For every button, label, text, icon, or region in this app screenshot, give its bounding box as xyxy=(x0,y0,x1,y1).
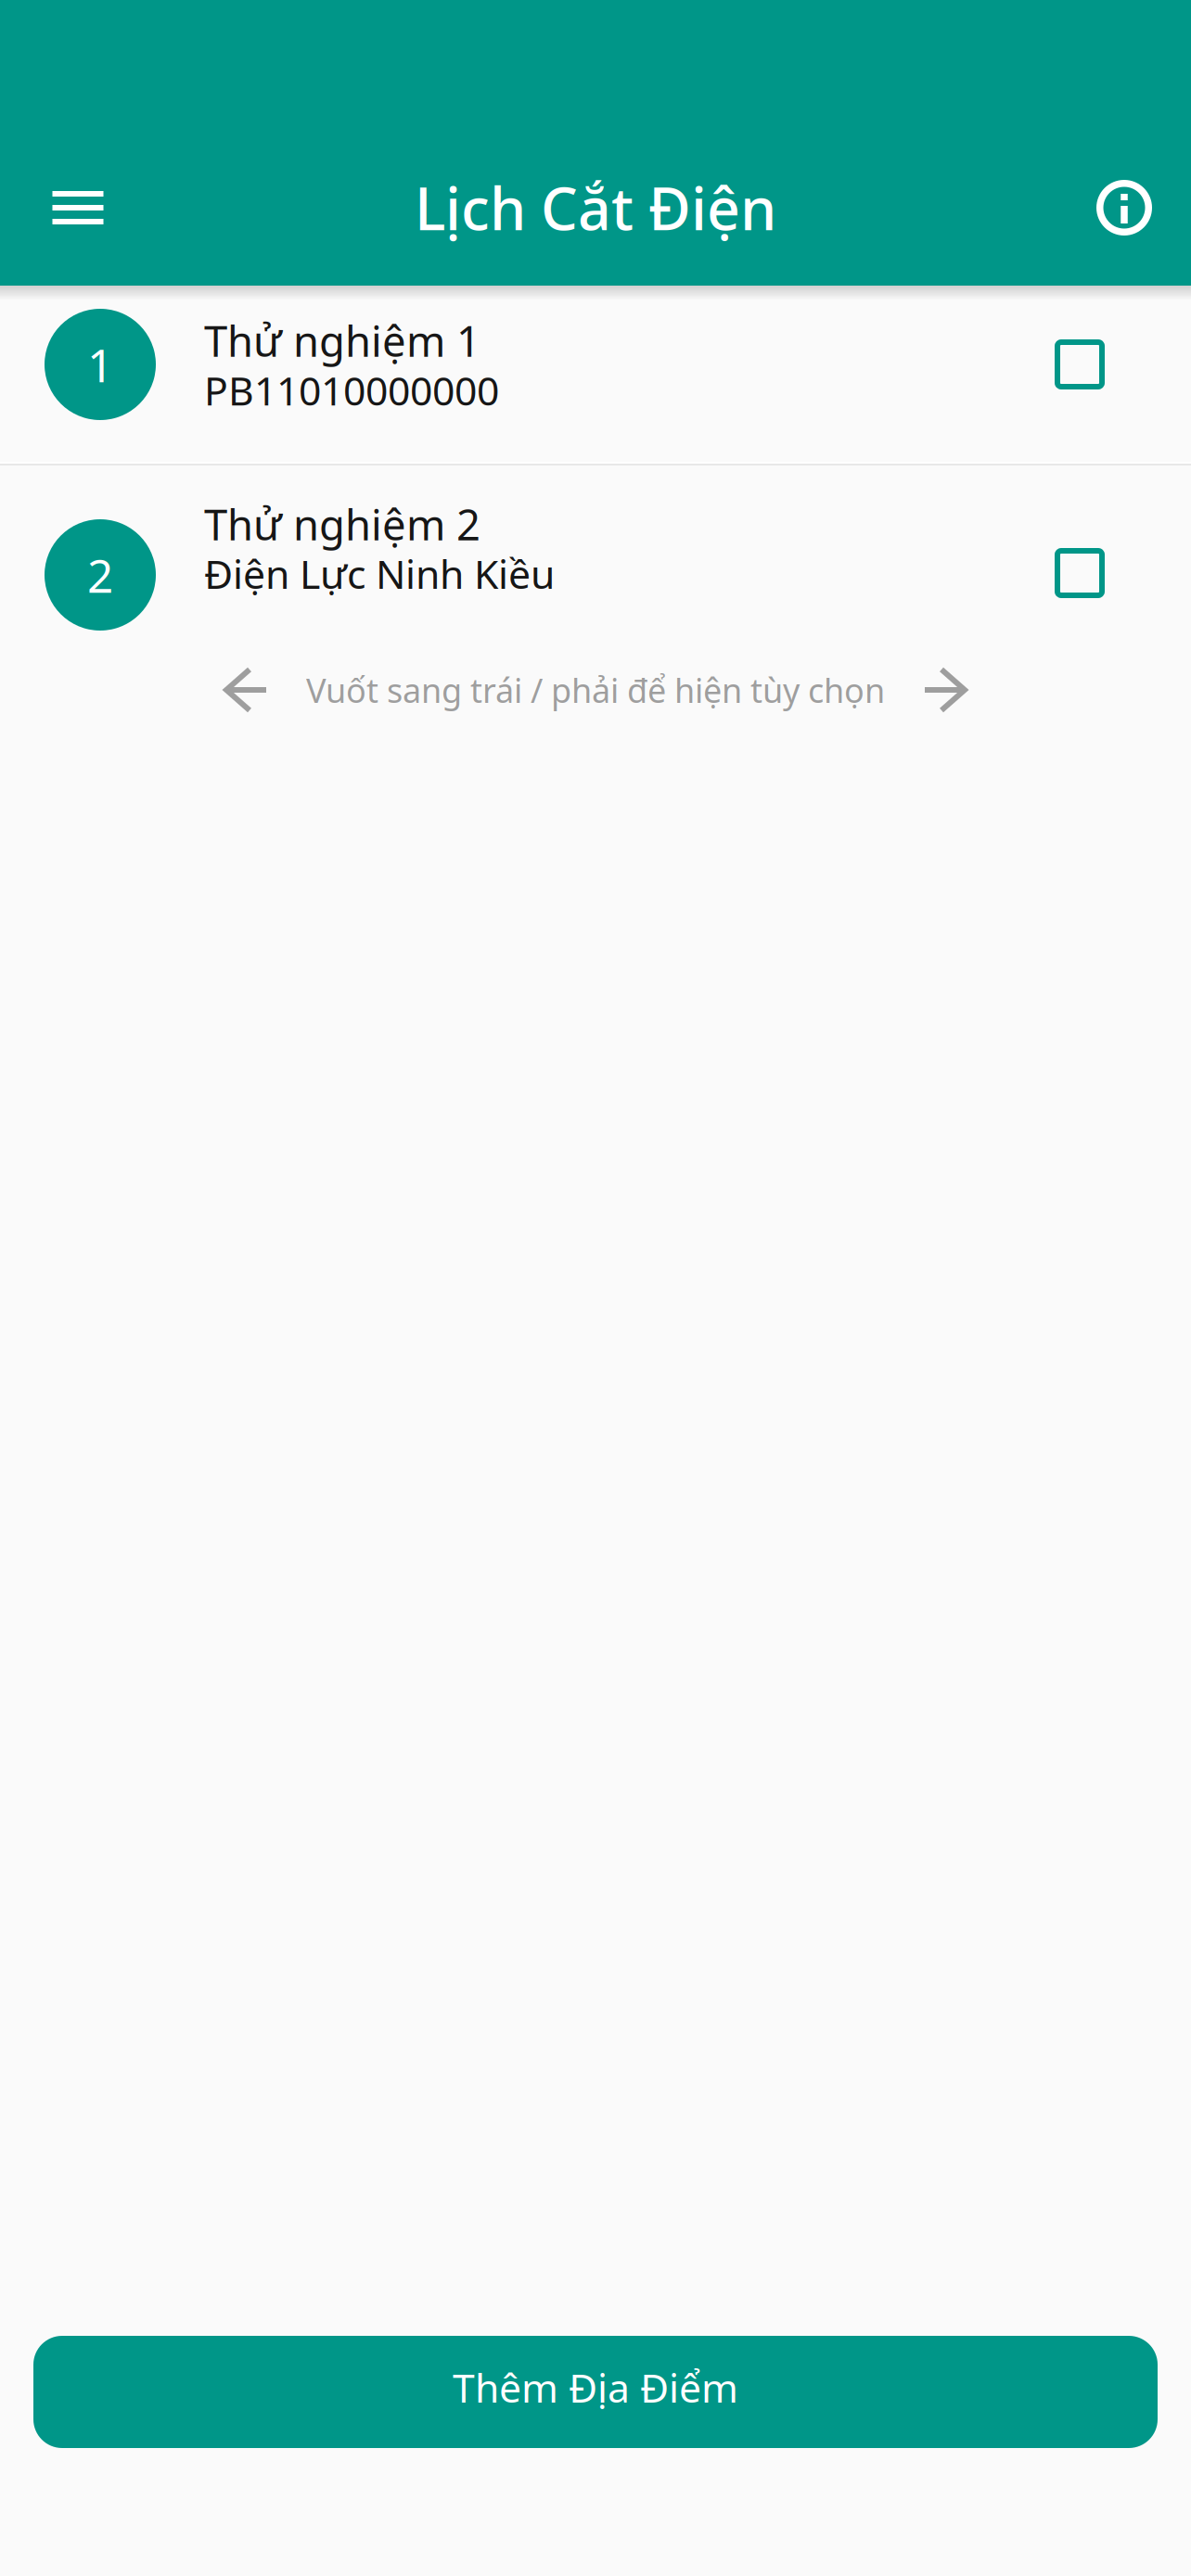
button[interactable]: Information xyxy=(1073,157,1175,259)
staticText: Lịch Cắt Điện xyxy=(415,169,776,246)
staticText: Điện Lực Ninh Kiều xyxy=(204,547,555,600)
button[interactable]: 1 xyxy=(0,286,1191,462)
staticText: 2 xyxy=(87,545,113,605)
staticText: Thêm Địa Điểm xyxy=(453,2361,738,2414)
button[interactable]: Select xyxy=(1055,339,1105,389)
button[interactable]: Menu xyxy=(27,157,129,259)
staticText: 1 xyxy=(87,334,113,395)
staticText: Vuốt sang trái / phải để hiện tùy chọn xyxy=(306,668,885,712)
button[interactable]: Thêm Địa Điểm xyxy=(33,2336,1158,2448)
button[interactable]: 2 xyxy=(0,465,1191,742)
staticText: Thử nghiệm 2 xyxy=(204,496,480,552)
staticText: PB11010000000 xyxy=(204,364,499,416)
staticText: Thử nghiệm 1 xyxy=(204,313,480,368)
button[interactable]: Select xyxy=(1055,548,1105,598)
